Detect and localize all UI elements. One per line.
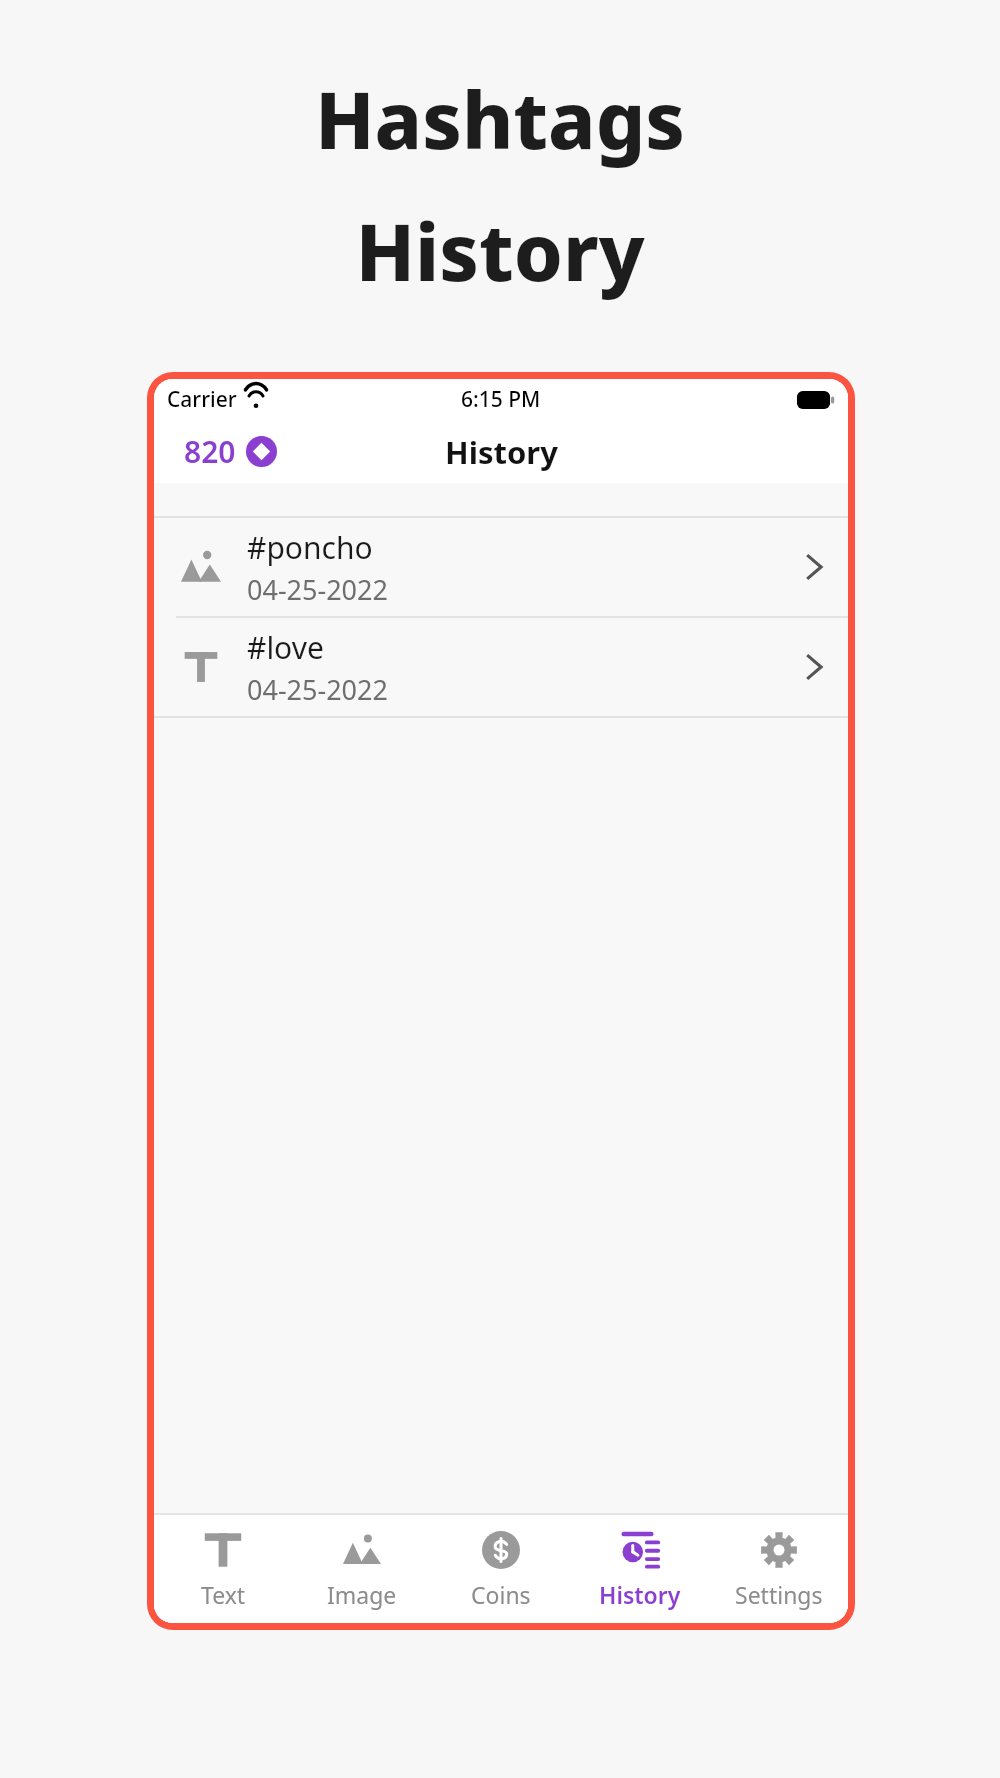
staticText: 04-25-2022 [247,671,388,708]
button[interactable]: Image [292,1515,431,1623]
staticText: Text [201,1579,246,1610]
button[interactable]: Coins [431,1515,570,1623]
button[interactable]: History [570,1515,709,1623]
other: Open details [803,649,824,685]
staticText: Coins [471,1579,531,1610]
staticText: 820 [184,431,236,472]
other: Open details [803,549,824,585]
button[interactable]: Text [154,1515,292,1623]
staticText: 6:15 PM [461,385,541,414]
staticText: Carrier [167,385,237,414]
staticText: Hashtags [0,66,1000,172]
button[interactable]: Settings [709,1515,848,1623]
staticText: 04-25-2022 [247,571,388,608]
button[interactable]: 820 [154,425,289,478]
staticText: Settings [735,1579,823,1610]
button[interactable]: #love [154,618,848,716]
button[interactable]: #poncho [154,518,848,616]
staticText: History [0,198,1000,304]
staticText: History [599,1579,681,1610]
staticText: #love [247,627,324,668]
staticText: History [445,431,558,473]
staticText: Image [327,1579,397,1610]
staticText: #poncho [247,527,373,568]
